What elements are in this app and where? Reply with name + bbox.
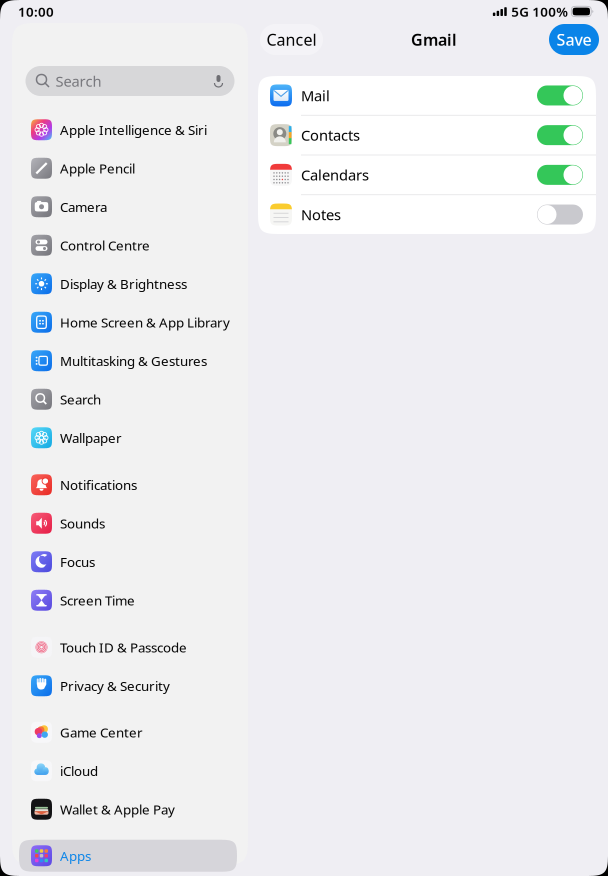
- button[interactable]: Wallpaper: [12, 418, 248, 457]
- staticText: Save: [556, 29, 591, 50]
- staticText: Apple Pencil: [60, 159, 135, 177]
- button[interactable]: Search: [25, 66, 234, 96]
- button[interactable]: Wallet & Apple Pay: [12, 790, 248, 828]
- button[interactable]: Screen Time: [12, 581, 248, 619]
- button[interactable]: iCloud: [12, 751, 248, 790]
- staticText: Calendars: [301, 165, 369, 185]
- button[interactable]: Game Center: [12, 713, 248, 751]
- staticText: Apple Intelligence & Siri: [60, 121, 207, 139]
- staticText: Notes: [301, 205, 341, 224]
- staticText: 5G 100%: [508, 3, 568, 20]
- staticText: Screen Time: [60, 591, 135, 609]
- button[interactable]: Touch ID & Passcode: [12, 628, 248, 666]
- button[interactable]: Focus: [12, 542, 248, 581]
- staticText: Game Center: [60, 723, 143, 741]
- staticText: Sounds: [60, 514, 105, 532]
- staticText: Apps: [60, 847, 91, 865]
- button[interactable]: Mail: [258, 76, 596, 115]
- staticText: Contacts: [301, 125, 360, 145]
- staticText: Focus: [60, 553, 95, 571]
- button[interactable]: Display & Brightness: [12, 264, 248, 303]
- staticText: Control Centre: [60, 236, 150, 254]
- button[interactable]: Home Screen & App Library: [12, 303, 248, 341]
- button[interactable]: Contacts: [258, 116, 596, 155]
- staticText: 10:00: [18, 3, 54, 20]
- button[interactable]: Sounds: [12, 504, 248, 542]
- staticText: Search: [60, 390, 101, 408]
- button[interactable]: Apps: [12, 836, 248, 875]
- button[interactable]: Camera: [12, 187, 248, 226]
- staticText: Notifications: [60, 476, 137, 494]
- button[interactable]: Multitasking & Gestures: [12, 341, 248, 380]
- button[interactable]: Apple Intelligence & Siri: [12, 110, 248, 149]
- staticText: Gmail: [411, 29, 457, 50]
- staticText: Privacy & Security: [60, 677, 170, 695]
- staticText: Home Screen & App Library: [60, 313, 230, 331]
- button[interactable]: Privacy & Security: [12, 666, 248, 705]
- staticText: Wallpaper: [60, 429, 122, 447]
- staticText: Cancel: [266, 29, 316, 50]
- button[interactable]: Notifications: [12, 465, 248, 504]
- button[interactable]: Apple Pencil: [12, 149, 248, 187]
- button[interactable]: Calendars: [258, 155, 596, 194]
- staticText: Touch ID & Passcode: [60, 638, 187, 656]
- button[interactable]: Save: [549, 24, 599, 55]
- staticText: Multitasking & Gestures: [60, 352, 207, 370]
- button[interactable]: Notes: [258, 195, 596, 234]
- staticText: Mail: [301, 86, 330, 105]
- staticText: Wallet & Apple Pay: [60, 800, 175, 818]
- staticText: Search: [55, 71, 101, 91]
- staticText: Camera: [60, 198, 107, 216]
- button[interactable]: Search: [12, 380, 248, 418]
- button[interactable]: Control Centre: [12, 226, 248, 264]
- staticText: Display & Brightness: [60, 275, 187, 293]
- button[interactable]: Cancel: [260, 24, 323, 55]
- staticText: iCloud: [60, 762, 98, 780]
